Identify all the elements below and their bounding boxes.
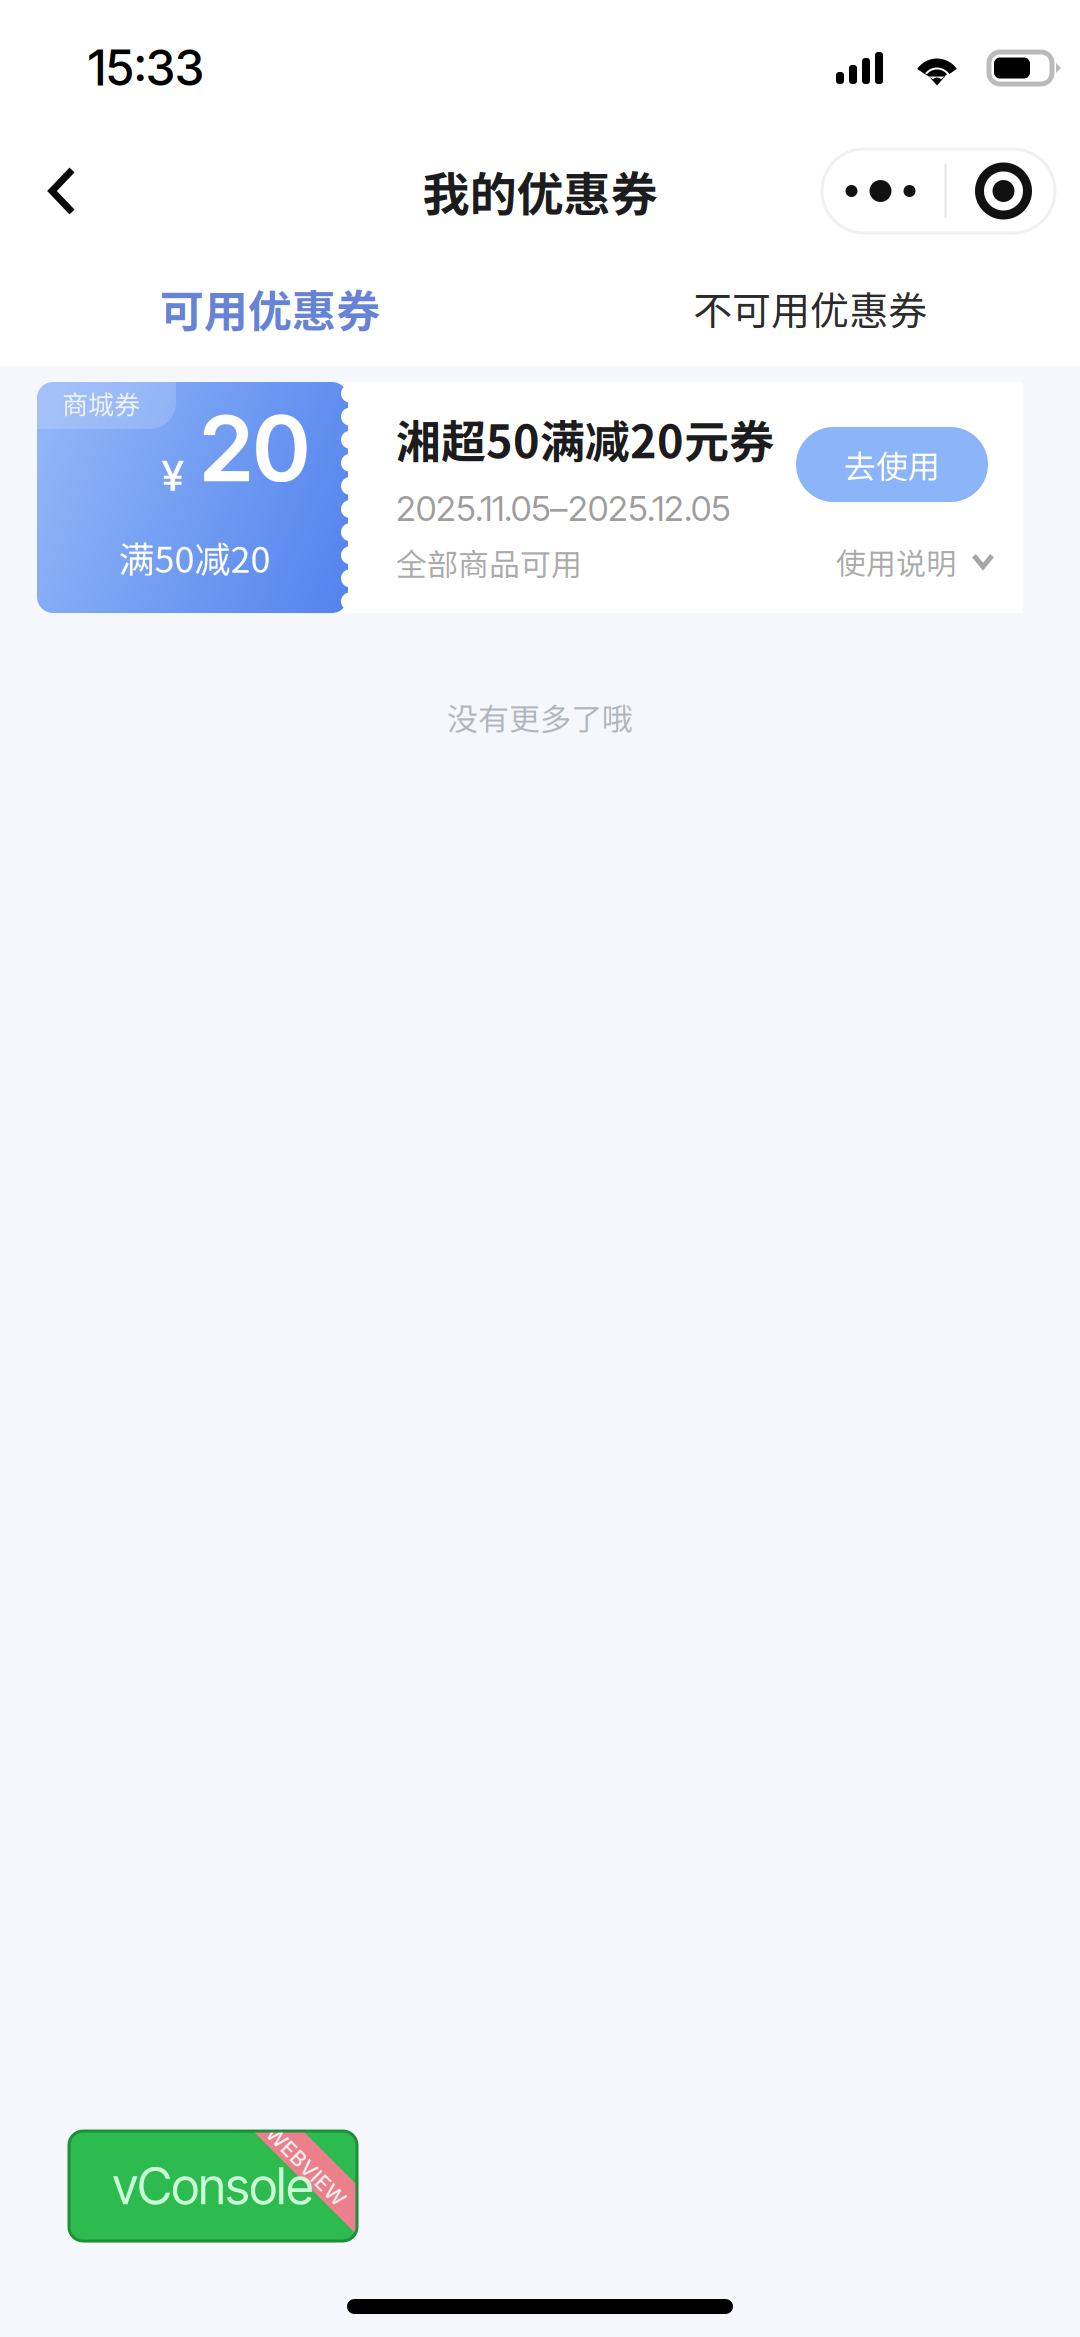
button[interactable]: Close mini program — [946, 149, 1060, 233]
button[interactable]: 可用优惠券 — [0, 259, 540, 357]
staticText: 湘超50满减20元券 — [396, 406, 774, 471]
staticText: 我的优惠券 — [422, 157, 657, 225]
staticText: 20 — [200, 394, 310, 503]
staticText: 去使用 — [844, 441, 940, 488]
staticText: 使用说明 — [836, 540, 956, 583]
staticText: ¥ — [162, 450, 184, 501]
staticText: 商城券 — [62, 384, 140, 422]
button[interactable]: Back — [0, 142, 116, 240]
staticText: vConsole — [112, 2156, 313, 2216]
button[interactable]: 使用说明 — [836, 540, 994, 583]
button[interactable]: 商城券 — [37, 382, 1023, 613]
staticText: 满50减20 — [118, 531, 270, 583]
button[interactable]: 去使用 — [796, 427, 988, 502]
button[interactable]: 不可用优惠券 — [540, 259, 1080, 357]
button[interactable]: WEBVIEW — [69, 2131, 357, 2241]
staticText: 可用优惠券 — [160, 276, 380, 340]
staticText: WEBVIEW — [254, 2153, 357, 2179]
staticText: 没有更多了哦 — [447, 695, 633, 739]
staticText: 2025.11.05–2025.12.05 — [396, 487, 730, 529]
staticText: 不可用优惠券 — [693, 280, 927, 336]
staticText: 15:33 — [88, 39, 204, 97]
staticText: 全部商品可用 — [396, 540, 582, 585]
button[interactable]: More options — [816, 149, 944, 233]
